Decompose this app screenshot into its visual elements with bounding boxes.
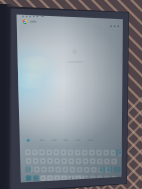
button[interactable] (0, 0, 142, 189)
